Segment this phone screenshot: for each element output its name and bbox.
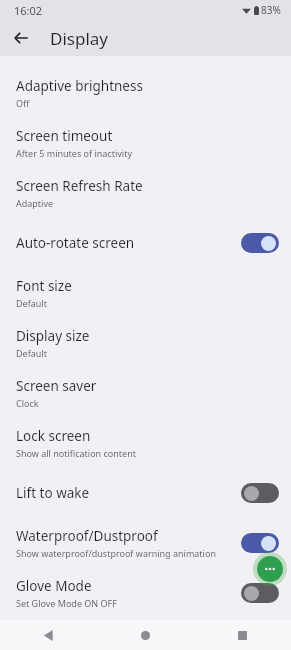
staticText: Auto-rotate screen (16, 234, 135, 252)
staticText: Waterproof/Dustproof (16, 527, 158, 545)
staticText: Adaptive (16, 197, 54, 209)
staticText: Display (50, 27, 108, 50)
button[interactable]: Back (0, 620, 97, 650)
staticText: Off (16, 97, 30, 109)
staticText: 16:02 (14, 3, 43, 18)
button[interactable]: Lock screen (0, 418, 291, 468)
staticText: Lift to wake (16, 484, 90, 502)
button[interactable] (241, 533, 279, 553)
button[interactable] (241, 583, 279, 603)
button[interactable] (241, 233, 279, 253)
button[interactable]: Floating menu (253, 552, 287, 586)
staticText: Default (16, 297, 47, 309)
staticText: Display size (16, 327, 90, 345)
button[interactable]: Display size (0, 318, 291, 368)
button[interactable]: Adaptive brightness (0, 68, 291, 118)
staticText: Set Glove Mode ON OFF (16, 597, 117, 609)
staticText: Screen timeout (16, 127, 113, 145)
staticText: Adaptive brightness (16, 77, 143, 95)
button[interactable]: Auto-rotate screen (0, 218, 291, 268)
button[interactable]: Glove Mode (0, 568, 291, 618)
button[interactable]: Home (97, 620, 194, 650)
staticText: Show waterproof/dustproof warning animat… (16, 547, 216, 559)
button[interactable]: Font size (0, 268, 291, 318)
staticText: Screen Refresh Rate (16, 177, 143, 195)
staticText: Screen saver (16, 377, 97, 395)
staticText: Clock (16, 397, 39, 409)
staticText: Default (16, 347, 47, 359)
button[interactable]: Screen Refresh Rate (0, 168, 291, 218)
button[interactable] (241, 483, 279, 503)
button[interactable]: Screen timeout (0, 118, 291, 168)
button[interactable]: Waterproof/Dustproof (0, 518, 291, 568)
button[interactable]: Recent apps (194, 620, 291, 650)
staticText: Font size (16, 277, 72, 295)
staticText: Lock screen (16, 427, 91, 445)
button[interactable]: Screen saver (0, 368, 291, 418)
staticText: 83% (261, 3, 281, 17)
staticText: Show all notification content (16, 447, 136, 459)
button[interactable]: Lift to wake (0, 468, 291, 518)
staticText: Glove Mode (16, 577, 92, 595)
button[interactable]: Back (6, 23, 36, 53)
staticText: After 5 minutes of inactivity (16, 147, 132, 159)
